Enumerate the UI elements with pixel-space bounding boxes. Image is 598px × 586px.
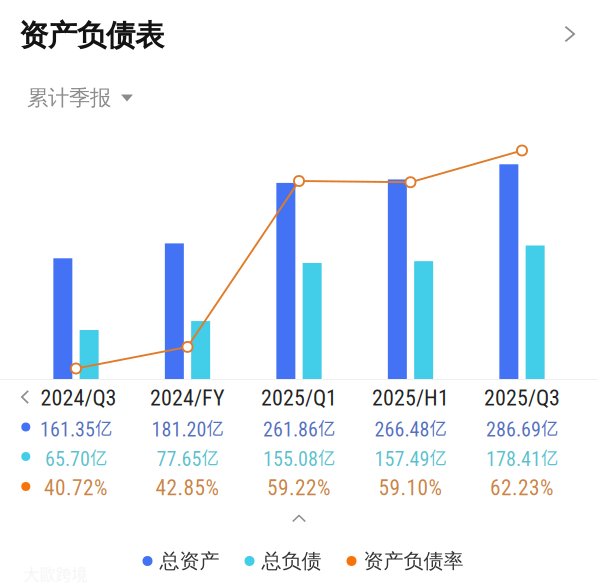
staticText: 59.22%	[267, 475, 331, 500]
staticText: 2025/Q3	[484, 385, 560, 411]
staticText: 总资产	[159, 549, 219, 573]
staticText: 181.20亿	[151, 415, 223, 441]
button[interactable]: 累计季报	[0, 84, 598, 112]
staticText: 62.23%	[490, 475, 554, 500]
staticText: 资产负债表	[19, 17, 164, 53]
staticText: 266.48亿	[374, 415, 446, 441]
staticText: 65.70亿	[45, 444, 107, 470]
staticText: 261.86亿	[263, 415, 335, 441]
staticText: 59.10%	[378, 475, 442, 500]
button[interactable]: 资产负债表	[0, 15, 598, 55]
staticText: 大歐跨境	[23, 562, 87, 585]
staticText: 总负债	[261, 549, 321, 573]
button[interactable]: Previous periods	[12, 384, 38, 410]
staticText: 178.41亿	[486, 444, 558, 470]
staticText: 40.72%	[44, 475, 108, 500]
button[interactable]: Collapse	[267, 505, 331, 531]
staticText: 资产负债率	[363, 549, 463, 573]
staticText: 2025/H1	[372, 385, 449, 411]
staticText: 42.85%	[155, 475, 219, 500]
staticText: 2025/Q1	[261, 385, 337, 411]
staticText: 2024/Q3	[40, 385, 116, 411]
staticText: 161.35亿	[40, 415, 112, 441]
staticText: 157.49亿	[374, 444, 446, 470]
staticText: 77.65亿	[156, 444, 218, 470]
staticText: 累计季报	[27, 85, 111, 111]
staticText: 286.69亿	[486, 415, 558, 441]
staticText: 155.08亿	[263, 444, 335, 470]
staticText: 2024/FY	[150, 385, 225, 411]
